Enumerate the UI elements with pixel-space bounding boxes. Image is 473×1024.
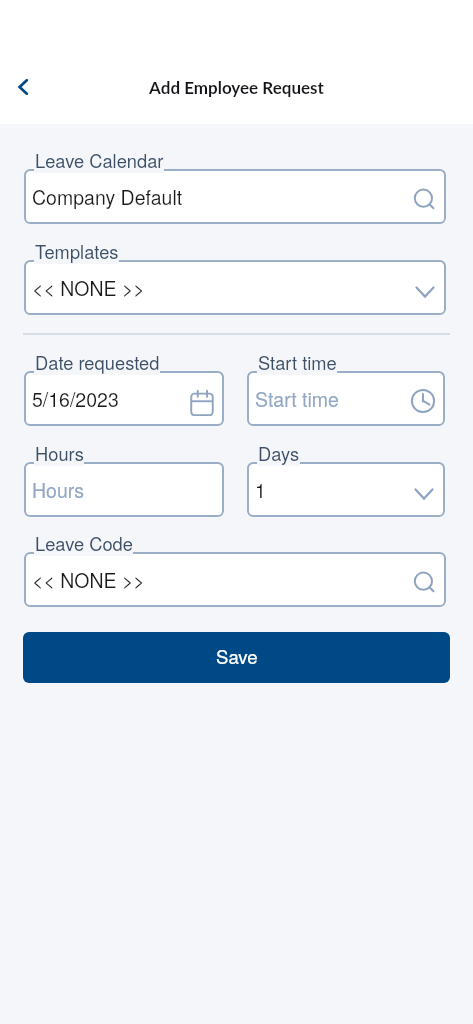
button[interactable]: Search leave code [408, 566, 440, 598]
staticText: Save [216, 643, 258, 670]
button[interactable]: Open templates list [409, 276, 441, 308]
button[interactable]: Search leave calendar [408, 183, 440, 215]
button[interactable]: Hours [24, 462, 224, 517]
button[interactable]: << NONE >> [24, 552, 446, 607]
staticText: << NONE >> [32, 566, 145, 594]
staticText: << NONE >> [32, 274, 145, 302]
button[interactable]: Start time [247, 371, 445, 426]
staticText: Start time [255, 385, 339, 413]
staticText: Hours [32, 476, 85, 504]
button[interactable]: 5/16/2023 [24, 371, 224, 426]
button[interactable]: Save [23, 632, 450, 683]
staticText: Date requested [35, 349, 160, 375]
button[interactable]: << NONE >> [24, 260, 446, 315]
button[interactable]: Choose number of days [408, 478, 440, 510]
staticText: Company Default [32, 183, 183, 211]
staticText: Days [258, 440, 300, 466]
staticText: Leave Calendar [35, 147, 164, 173]
button[interactable]: Pick date [186, 387, 218, 419]
staticText: Start time [258, 349, 337, 375]
staticText: Hours [35, 440, 84, 466]
staticText: Leave Code [35, 530, 133, 556]
staticText: Add Employee Request [0, 77, 473, 97]
button[interactable]: Pick start time [407, 385, 439, 417]
staticText: 1 [255, 476, 266, 504]
button[interactable]: Company Default [24, 169, 446, 224]
button[interactable]: Back [0, 64, 46, 110]
staticText: 5/16/2023 [32, 385, 119, 413]
button[interactable]: 1 [247, 462, 445, 517]
staticText: Templates [35, 238, 119, 264]
